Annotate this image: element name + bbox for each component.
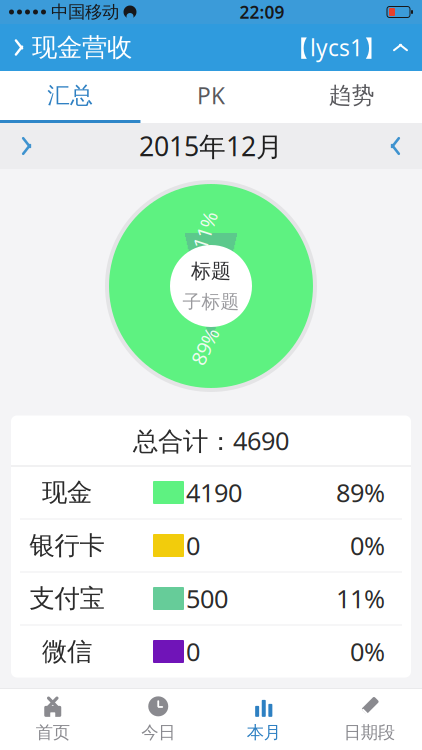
staticText: 支付宝 bbox=[29, 583, 104, 614]
staticText: 银行卡 bbox=[29, 530, 104, 561]
staticText: PK bbox=[197, 80, 225, 110]
staticText: 首页 bbox=[36, 722, 70, 743]
button[interactable]: 现金营收 bbox=[0, 24, 140, 71]
button[interactable]: 【lycs1】 bbox=[279, 24, 422, 71]
staticText: 89% bbox=[185, 333, 224, 359]
button[interactable]: 本月 bbox=[211, 689, 316, 750]
staticText: 2015年12月 bbox=[139, 128, 283, 164]
button[interactable]: 趋势 bbox=[281, 71, 422, 123]
button[interactable]: PK bbox=[141, 71, 281, 123]
staticText: 总合计：4690 bbox=[133, 424, 289, 457]
staticText: 标题 bbox=[191, 259, 231, 283]
button[interactable]: 今日 bbox=[105, 689, 211, 750]
staticText: 中国移动 bbox=[51, 1, 119, 23]
staticText: 汇总 bbox=[47, 82, 93, 109]
staticText: 子标题 bbox=[182, 290, 239, 313]
button[interactable]: Next month bbox=[369, 127, 422, 165]
staticText: 4190 bbox=[186, 476, 242, 509]
staticText: 500 bbox=[186, 582, 228, 615]
staticText: 89% bbox=[336, 476, 385, 509]
staticText: 0 bbox=[186, 529, 200, 562]
staticText: 趋势 bbox=[329, 82, 375, 109]
staticText: 22:09 bbox=[239, 0, 284, 23]
staticText: 日期段 bbox=[344, 722, 395, 743]
button[interactable]: 汇总 bbox=[0, 71, 141, 123]
staticText: 本月 bbox=[247, 722, 281, 743]
staticText: 0% bbox=[350, 635, 385, 668]
staticText: 今日 bbox=[141, 722, 175, 743]
staticText: 现金营收 bbox=[32, 32, 132, 63]
button[interactable]: 首页 bbox=[0, 689, 105, 750]
staticText: 【lycs1】 bbox=[287, 32, 386, 63]
staticText: 11% bbox=[185, 217, 224, 243]
staticText: 现金 bbox=[42, 477, 92, 508]
staticText: 微信 bbox=[42, 636, 92, 667]
button[interactable]: Previous month bbox=[0, 127, 53, 165]
staticText: 0% bbox=[350, 529, 385, 562]
staticText: 11% bbox=[336, 582, 385, 615]
staticText: 0 bbox=[186, 635, 200, 668]
button[interactable]: 日期段 bbox=[316, 689, 422, 750]
